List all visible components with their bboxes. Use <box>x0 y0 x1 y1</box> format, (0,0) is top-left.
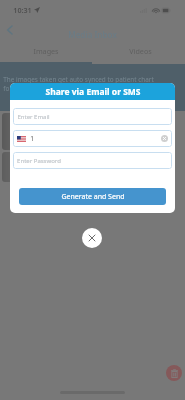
staticText: The images taken get auto synced to pati… <box>3 75 154 84</box>
button[interactable]: Enter Email <box>13 108 172 125</box>
staticText: for easy review. <box>3 84 50 93</box>
button[interactable]: Generate and Send <box>19 188 166 205</box>
staticText: 1 <box>30 134 34 143</box>
staticText: Media Inbox <box>68 29 117 40</box>
staticText: Enter Password <box>17 157 61 165</box>
staticText: Videos <box>129 46 152 56</box>
staticText: Images <box>33 46 59 56</box>
staticText: Share via Email or SMS <box>45 86 141 98</box>
button[interactable]: Delete <box>166 365 182 381</box>
button[interactable]: Enter Password <box>13 152 172 169</box>
button[interactable]: Back <box>0 21 18 39</box>
button[interactable]: Close <box>82 228 102 248</box>
staticText: Generate and Send <box>61 192 125 202</box>
staticText: 10:31 <box>13 5 32 15</box>
button[interactable]: 1 <box>13 130 172 147</box>
staticText: Enter Email <box>17 113 50 121</box>
